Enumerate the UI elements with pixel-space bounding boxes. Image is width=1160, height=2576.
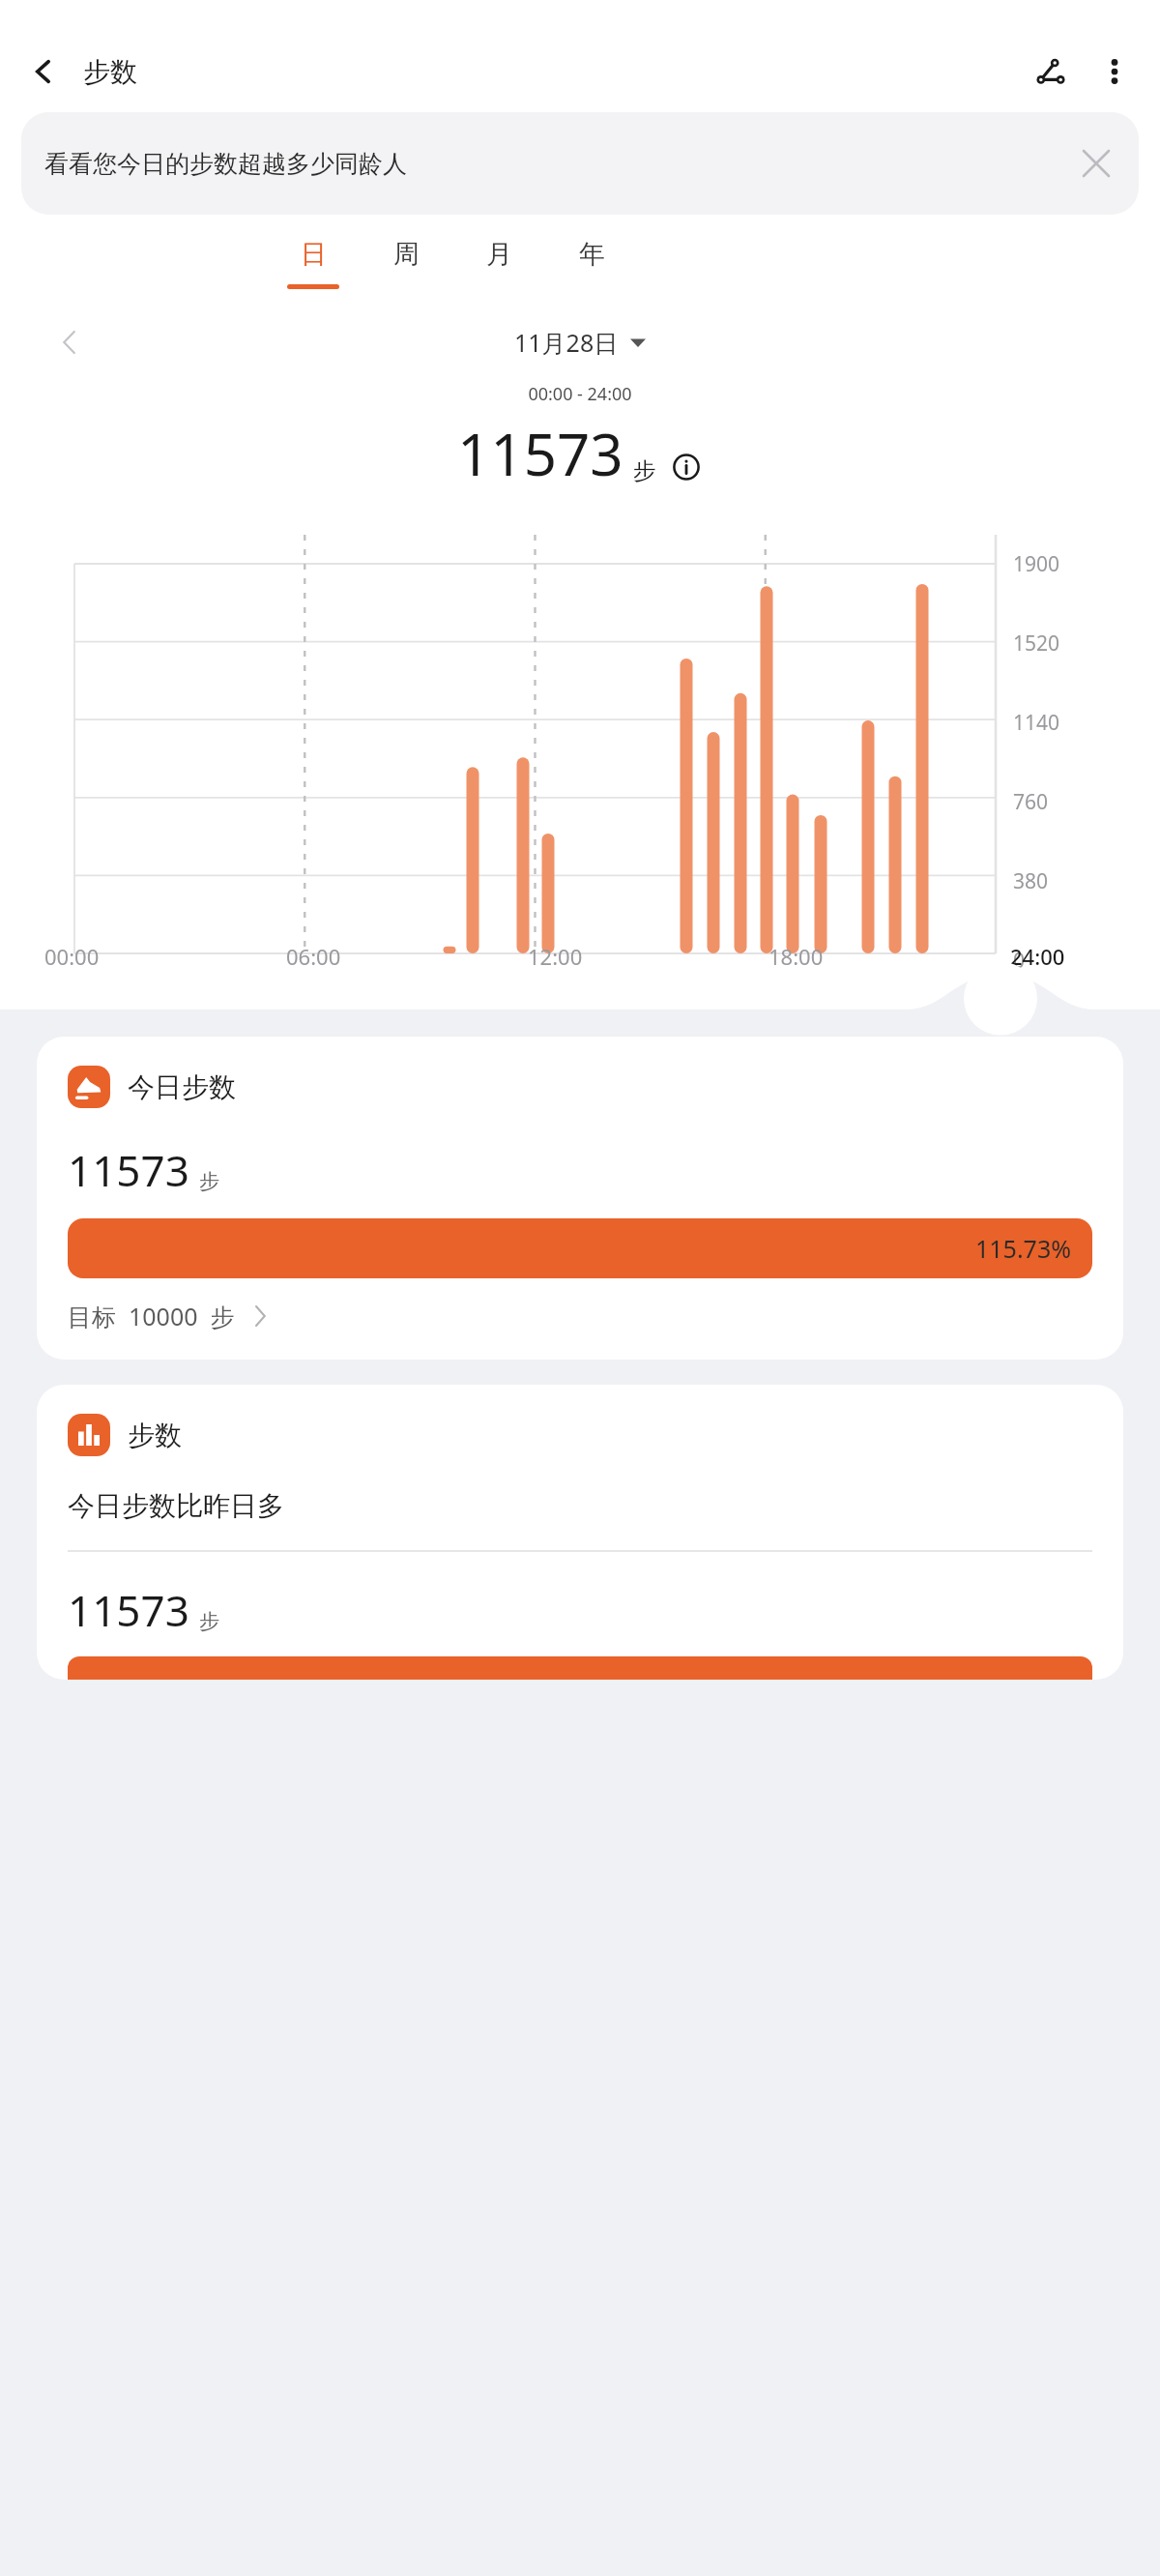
- staticText: 日: [301, 238, 327, 271]
- button[interactable]: 步数: [37, 1385, 1123, 1680]
- staticText: 06:00: [286, 942, 341, 971]
- staticText: 年: [579, 238, 605, 271]
- staticText: 步: [199, 1609, 219, 1634]
- button[interactable]: 日: [267, 238, 360, 289]
- staticText: 步: [633, 456, 656, 485]
- staticText: 今日步数比昨日多: [68, 1489, 284, 1523]
- staticText: 115.73%: [975, 1232, 1071, 1265]
- staticText: 看看您今日的步数超越多少同龄人: [44, 149, 1069, 179]
- staticText: 1140: [1013, 709, 1060, 737]
- staticText: 1520: [1013, 629, 1060, 658]
- staticText: 今日步数: [128, 1070, 236, 1104]
- button[interactable]: 月: [452, 238, 545, 289]
- button[interactable]: 11月28日: [514, 326, 646, 359]
- button[interactable]: Close: [1069, 136, 1123, 190]
- button[interactable]: 年: [545, 238, 638, 289]
- button[interactable]: More options: [1088, 45, 1141, 98]
- staticText: 11573: [457, 414, 623, 493]
- staticText: 24:00: [1010, 942, 1065, 971]
- button[interactable]: 今日步数: [37, 1037, 1123, 1360]
- button[interactable]: Back: [19, 47, 68, 96]
- staticText: 380: [1013, 867, 1049, 895]
- staticText: 1900: [1013, 550, 1060, 578]
- staticText: 步: [199, 1169, 219, 1194]
- button[interactable]: 周: [360, 238, 452, 289]
- staticText: 00:00: [44, 942, 100, 971]
- button[interactable]: 看看您今日的步数超越多少同龄人: [21, 112, 1139, 215]
- staticText: 步数: [128, 1419, 182, 1452]
- staticText: 步数: [83, 55, 137, 89]
- button[interactable]: Previous day: [48, 321, 91, 364]
- staticText: 12:00: [528, 942, 583, 971]
- staticText: 760: [1013, 788, 1049, 816]
- staticText: 周: [393, 238, 420, 271]
- staticText: 0: [1013, 947, 1026, 975]
- staticText: 00:00 - 24:00: [0, 382, 1160, 406]
- staticText: 11月28日: [514, 326, 619, 359]
- staticText: 11573: [68, 1581, 189, 1639]
- staticText: 18:00: [768, 942, 824, 971]
- staticText: 月: [486, 238, 512, 271]
- button[interactable]: 目标 10000 步: [68, 1300, 270, 1332]
- button[interactable]: Share: [1025, 45, 1077, 98]
- button[interactable]: Info: [670, 451, 703, 483]
- staticText: 目标 10000 步: [68, 1300, 235, 1332]
- staticText: 11573: [68, 1141, 189, 1199]
